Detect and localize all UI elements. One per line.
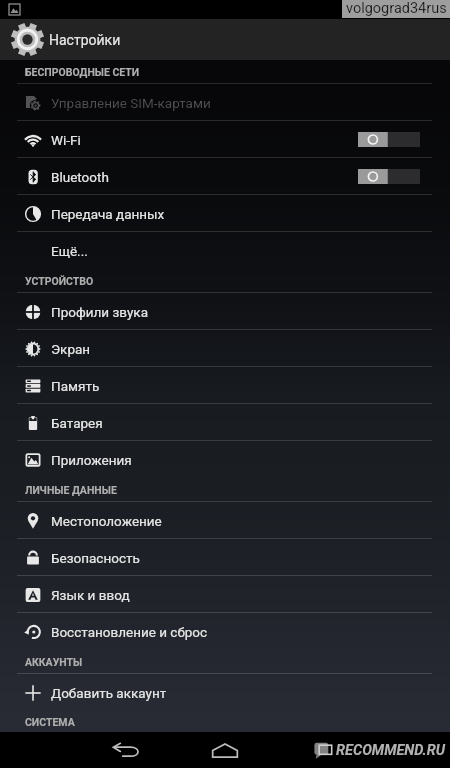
staticText: RECOMMEND.RU [336,742,445,759]
button[interactable]: Toggle [358,169,420,184]
staticText: УСТРОЙСТВО [25,275,94,287]
button[interactable]: Back [104,732,150,768]
button[interactable]: Батарея [0,404,450,441]
button[interactable]: Память [0,367,450,404]
staticText: Язык и ввод [51,587,130,603]
button[interactable]: Home [202,732,248,768]
staticText: Память [51,378,100,394]
button[interactable]: Приложения [0,441,450,478]
staticText: Настройки [49,32,121,48]
staticText: Местоположение [51,513,162,529]
button[interactable]: Ещё... [0,232,450,269]
staticText: Безопасность [51,550,140,566]
button[interactable]: Местоположение [0,502,450,539]
staticText: volgograd34rus [346,0,447,17]
staticText: Батарея [51,415,103,431]
button[interactable]: Безопасность [0,539,450,576]
button[interactable]: Экран [0,330,450,367]
staticText: Bluetooth [51,169,109,185]
button[interactable]: Передача данных [0,195,450,232]
staticText: Приложения [51,452,132,468]
staticText: Восстановление и сброс [51,624,208,640]
staticText: Wi-Fi [51,132,81,148]
button[interactable]: Восстановление и сброс [0,613,450,650]
button[interactable]: Wi-Fi [0,121,450,158]
button[interactable]: Добавить аккаунт [0,674,450,711]
staticText: Управление SIM-картами [51,95,211,111]
staticText: ЛИЧНЫЕ ДАННЫЕ [25,484,117,496]
staticText: Профили звука [51,304,148,320]
staticText: Экран [51,341,91,357]
staticText: Передача данных [51,206,165,222]
button[interactable]: Профили звука [0,293,450,330]
staticText: Добавить аккаунт [51,685,167,701]
staticText: БЕСПРОВОДНЫЕ СЕТИ [25,66,140,78]
button[interactable]: Управление SIM-картами [0,84,450,121]
staticText: Ещё... [51,243,88,259]
staticText: СИСТЕМА [25,716,75,728]
button[interactable]: Toggle [358,132,420,147]
staticText: АККАУНТЫ [25,656,83,668]
button[interactable]: Язык и ввод [0,576,450,613]
button[interactable]: Bluetooth [0,158,450,195]
